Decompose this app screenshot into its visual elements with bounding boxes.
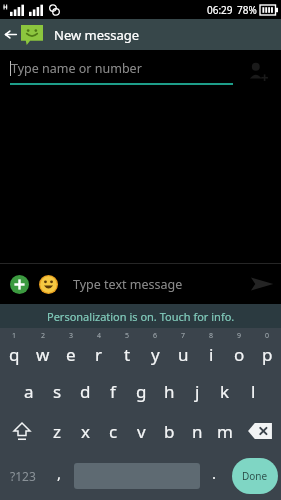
- staticText: Done: [242, 469, 268, 483]
- button[interactable]: Type name or number: [10, 60, 233, 85]
- button[interactable]: Send: [243, 265, 281, 303]
- staticText: m: [217, 420, 233, 443]
- staticText: w: [36, 343, 50, 366]
- button[interactable]: a: [15, 372, 43, 410]
- staticText: ,: [57, 463, 62, 483]
- staticText: 4: [97, 331, 102, 341]
- staticText: l: [251, 380, 256, 403]
- staticText: 9: [237, 331, 242, 341]
- button[interactable]: l: [239, 372, 267, 410]
- button[interactable]: z: [43, 410, 71, 452]
- button[interactable]: Attach: [6, 271, 32, 297]
- button[interactable]: Shift: [0, 410, 43, 452]
- staticText: g: [136, 380, 147, 403]
- staticText: 78%: [237, 3, 257, 17]
- staticText: t: [124, 343, 131, 366]
- staticText: f: [110, 380, 116, 403]
- button[interactable]: 2: [29, 328, 57, 372]
- button[interactable]: Done: [232, 458, 278, 494]
- button[interactable]: Add contact: [243, 57, 273, 87]
- staticText: 8: [209, 331, 214, 341]
- staticText: 3: [69, 331, 74, 341]
- staticText: x: [81, 420, 90, 443]
- staticText: h: [164, 380, 175, 403]
- button[interactable]: 8: [197, 328, 225, 372]
- staticText: Type name or number: [11, 60, 142, 77]
- button[interactable]: f: [99, 372, 127, 410]
- staticText: s: [53, 380, 62, 403]
- staticText: 5: [125, 331, 130, 341]
- button[interactable]: ?123: [0, 452, 45, 500]
- staticText: d: [80, 380, 91, 403]
- staticText: 2: [41, 331, 46, 341]
- staticText: n: [192, 420, 203, 443]
- button[interactable]: .: [200, 452, 229, 500]
- staticText: q: [9, 343, 20, 366]
- button[interactable]: m: [211, 410, 239, 452]
- button[interactable]: v: [127, 410, 155, 452]
- button[interactable]: 3: [57, 328, 85, 372]
- button[interactable]: 7: [169, 328, 197, 372]
- staticText: i: [209, 343, 214, 366]
- button[interactable]: Personalization is on. Touch for info.: [0, 304, 281, 328]
- button[interactable]: 1: [0, 328, 29, 372]
- button[interactable]: 6: [141, 328, 169, 372]
- staticText: 1: [12, 331, 17, 341]
- staticText: Personalization is on. Touch for info.: [47, 309, 235, 324]
- button[interactable]: Backspace: [239, 410, 281, 452]
- button[interactable]: 4: [85, 328, 113, 372]
- staticText: y: [151, 343, 160, 366]
- staticText: z: [53, 420, 61, 443]
- button[interactable]: h: [155, 372, 183, 410]
- button[interactable]: c: [99, 410, 127, 452]
- staticText: .: [212, 463, 217, 483]
- button[interactable]: 5: [113, 328, 141, 372]
- button[interactable]: ,: [45, 452, 74, 500]
- staticText: u: [178, 343, 189, 366]
- staticText: e: [66, 343, 76, 366]
- button[interactable]: 0: [253, 328, 281, 372]
- button[interactable]: d: [71, 372, 99, 410]
- staticText: 7: [181, 331, 186, 341]
- button[interactable]: Type text message: [73, 276, 243, 293]
- staticText: c: [109, 420, 118, 443]
- staticText: ?123: [10, 468, 36, 484]
- staticText: r: [95, 343, 103, 366]
- staticText: j: [195, 380, 200, 403]
- button[interactable]: n: [183, 410, 211, 452]
- button[interactable]: b: [155, 410, 183, 452]
- button[interactable]: j: [183, 372, 211, 410]
- staticText: o: [234, 343, 245, 366]
- staticText: 0: [265, 331, 270, 341]
- staticText: a: [24, 380, 34, 403]
- button[interactable]: k: [211, 372, 239, 410]
- staticText: Type text message: [73, 276, 183, 293]
- staticText: New message: [54, 26, 140, 44]
- button[interactable]: Insert emoji: [35, 271, 61, 297]
- button[interactable]: 9: [225, 328, 253, 372]
- staticText: v: [137, 420, 146, 443]
- staticText: k: [220, 380, 230, 403]
- staticText: 06:29: [207, 3, 233, 17]
- staticText: 6: [153, 331, 158, 341]
- button[interactable]: s: [43, 372, 71, 410]
- button[interactable]: g: [127, 372, 155, 410]
- staticText: p: [262, 343, 273, 366]
- button[interactable]: Back: [0, 19, 20, 50]
- staticText: b: [164, 420, 175, 443]
- button[interactable]: x: [71, 410, 99, 452]
